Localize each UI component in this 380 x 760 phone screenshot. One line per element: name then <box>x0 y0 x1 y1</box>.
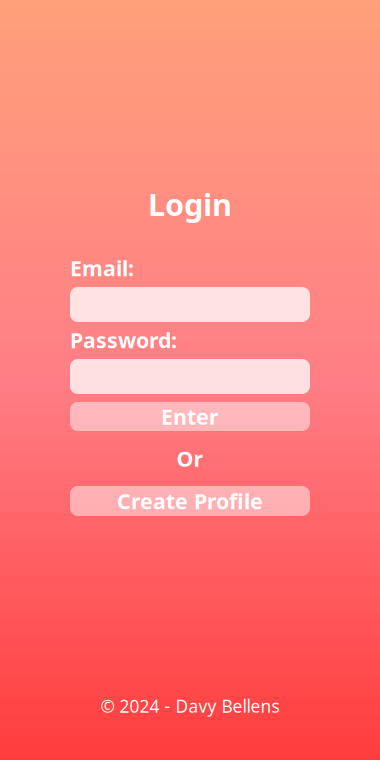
button[interactable]: Password <box>70 359 310 394</box>
staticText: Password: <box>70 326 177 354</box>
staticText: Login <box>148 184 232 224</box>
button[interactable]: Create Profile <box>70 486 310 516</box>
button[interactable]: Email <box>70 287 310 322</box>
staticText: Email: <box>70 254 134 282</box>
staticText: Enter <box>161 402 219 431</box>
staticText: Create Profile <box>117 487 263 515</box>
staticText: Or <box>176 444 203 473</box>
staticText: © 2024 - Davy Bellens <box>100 694 279 717</box>
button[interactable]: Enter <box>70 402 310 431</box>
